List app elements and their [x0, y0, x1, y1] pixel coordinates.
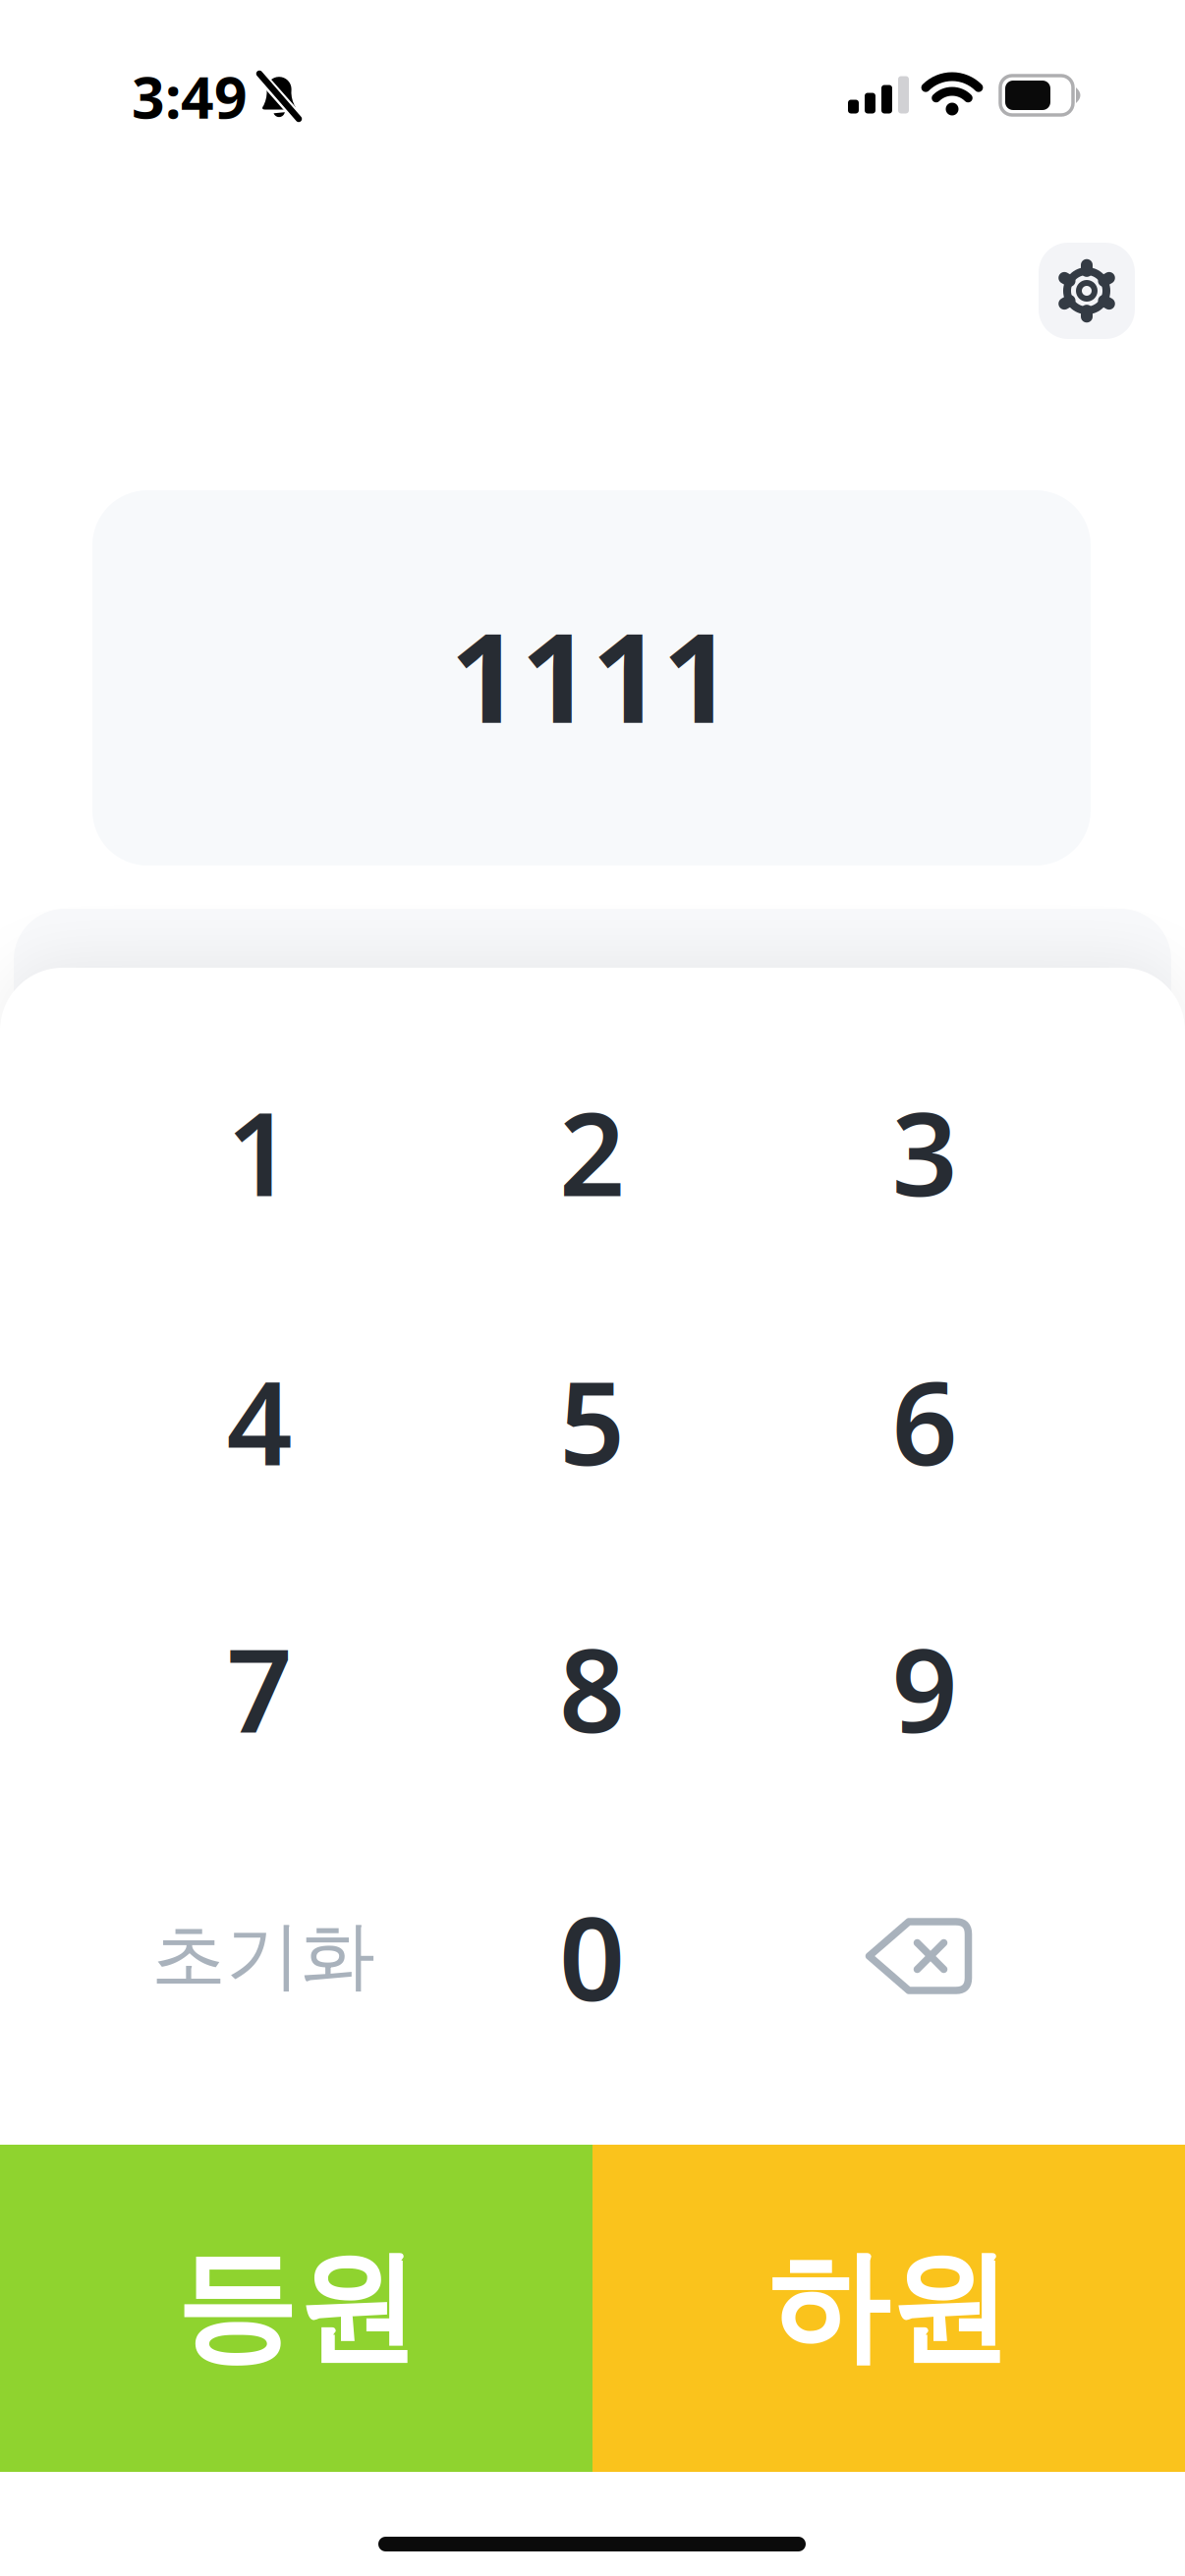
button[interactable]: 등원 — [0, 2145, 592, 2472]
staticText: 하원 — [768, 2234, 1010, 2382]
button[interactable]: Settings — [1039, 243, 1135, 339]
button[interactable]: 초기화 — [97, 1822, 430, 2090]
staticText: 1 — [226, 1075, 292, 1228]
button[interactable]: 4 — [93, 1287, 426, 1555]
staticText: 2 — [559, 1075, 625, 1228]
staticText: 9 — [892, 1611, 958, 1764]
staticText: 8 — [559, 1611, 625, 1764]
staticText: 7 — [226, 1611, 292, 1764]
button[interactable]: 2 — [425, 1017, 759, 1286]
button[interactable]: 3 — [758, 1017, 1091, 1286]
staticText: 5 — [559, 1344, 625, 1497]
button[interactable]: 하원 — [592, 2145, 1185, 2472]
button[interactable]: 0 — [425, 1822, 759, 2090]
staticText: 등원 — [175, 2234, 417, 2382]
staticText: 4 — [226, 1344, 292, 1497]
staticText: 6 — [892, 1344, 958, 1497]
staticText: 3 — [892, 1075, 958, 1228]
button[interactable]: 8 — [425, 1554, 759, 1822]
staticText: 3:49 — [132, 58, 248, 134]
button[interactable]: 6 — [758, 1287, 1091, 1555]
staticText: 초기화 — [151, 1910, 375, 2002]
button[interactable]: Delete — [752, 1822, 1085, 2090]
button[interactable]: 5 — [425, 1287, 759, 1555]
button[interactable]: 9 — [758, 1554, 1091, 1822]
button[interactable]: 7 — [93, 1554, 426, 1822]
staticText: 0 — [559, 1880, 625, 2033]
button[interactable]: 1 — [93, 1017, 426, 1286]
staticText: 1111 — [450, 593, 733, 757]
